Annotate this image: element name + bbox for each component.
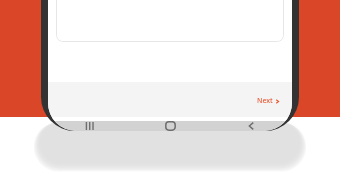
button[interactable]: Recents: [48, 121, 130, 131]
button[interactable]: Back: [211, 121, 292, 131]
button[interactable]: Next: [245, 90, 292, 112]
staticText: Next: [257, 96, 273, 106]
button[interactable]: Home: [130, 121, 211, 131]
